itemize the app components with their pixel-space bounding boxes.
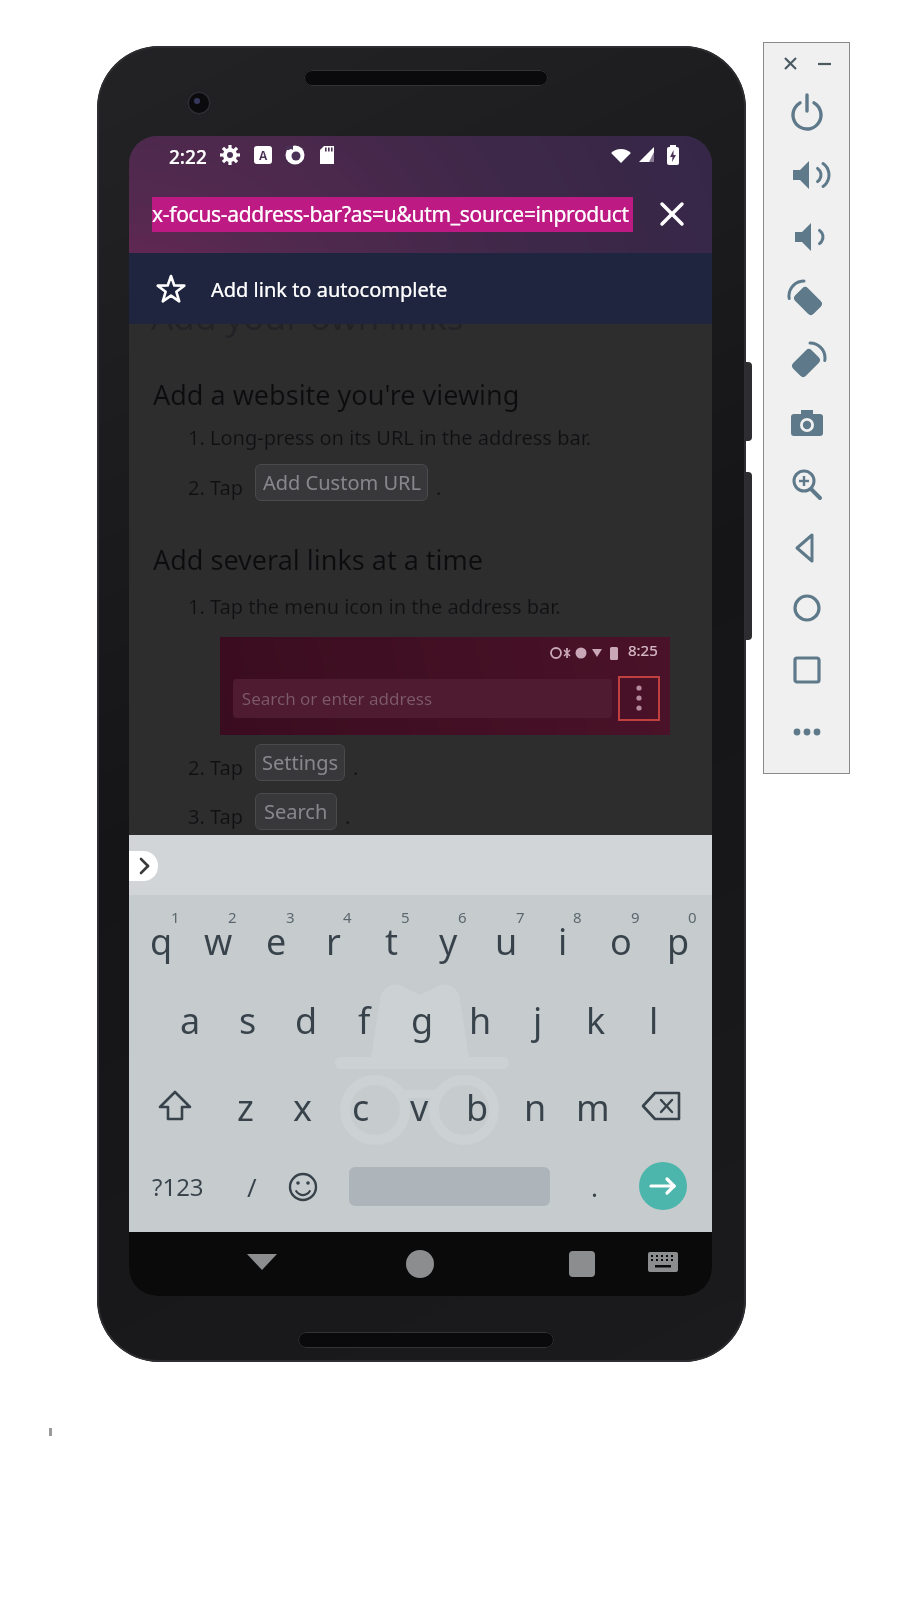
button[interactable]: n	[475, 1077, 595, 1137]
staticText: e	[266, 917, 287, 966]
button[interactable]: 1	[129, 887, 235, 947]
button[interactable]: b	[417, 1077, 537, 1137]
button[interactable]	[155, 1089, 195, 1125]
button[interactable]: a	[130, 990, 250, 1050]
button[interactable]: x	[243, 1077, 363, 1137]
button[interactable]	[245, 1250, 279, 1278]
button[interactable]: h	[420, 990, 540, 1050]
button[interactable]	[785, 215, 829, 259]
staticText: o	[610, 917, 632, 966]
button[interactable]	[569, 1251, 595, 1277]
staticText: Add a website you're viewing	[153, 376, 520, 413]
button[interactable]: 6	[402, 887, 522, 947]
button[interactable]: Add Custom URL	[255, 464, 428, 501]
staticText: Settings	[262, 749, 339, 776]
button[interactable]: o	[561, 911, 681, 971]
button[interactable]	[647, 1252, 679, 1278]
button[interactable]: q	[129, 911, 221, 971]
staticText: c	[352, 1083, 370, 1132]
button[interactable]: 9	[575, 887, 695, 947]
staticText: m	[576, 1083, 610, 1132]
button[interactable]	[785, 401, 829, 445]
button[interactable]: v	[359, 1077, 479, 1137]
staticText: w	[204, 917, 233, 966]
button[interactable]	[785, 339, 829, 383]
staticText: 2:22	[169, 144, 207, 170]
button[interactable]	[781, 54, 801, 74]
button[interactable]: s	[188, 990, 308, 1050]
button[interactable]: i	[503, 911, 623, 971]
button[interactable]: x-focus-address-bar?as=u&utm_source=inpr…	[152, 197, 633, 232]
button[interactable]: c	[301, 1077, 421, 1137]
button[interactable]: 2	[172, 887, 292, 947]
button[interactable]: 5	[345, 887, 465, 947]
button[interactable]: u	[446, 911, 566, 971]
button[interactable]: Add link to autocomplete	[129, 253, 712, 324]
button[interactable]: 4	[287, 887, 407, 947]
button[interactable]: z	[185, 1077, 305, 1137]
staticText: Search or enter address	[233, 687, 433, 710]
button[interactable]: Settings	[255, 744, 345, 781]
staticText: ?123	[152, 1170, 204, 1203]
staticText: 0	[688, 907, 697, 927]
button[interactable]	[785, 649, 829, 693]
button[interactable]: 7	[460, 887, 580, 947]
button[interactable]: /	[192, 1156, 312, 1216]
staticText: y	[439, 917, 458, 966]
staticText: 2	[228, 907, 237, 927]
button[interactable]: e	[216, 911, 336, 971]
button[interactable]	[785, 527, 829, 571]
staticText: v	[410, 1083, 429, 1132]
button[interactable]: t	[331, 911, 451, 971]
button[interactable]: 8	[517, 887, 637, 947]
staticText: a	[180, 996, 201, 1045]
staticText: A	[259, 147, 268, 163]
staticText: i	[558, 917, 568, 966]
button[interactable]	[287, 1171, 319, 1203]
staticText: r	[326, 917, 341, 966]
button[interactable]: l	[594, 990, 712, 1050]
staticText: z	[237, 1083, 254, 1132]
button[interactable]	[785, 153, 829, 197]
button[interactable]	[406, 1250, 434, 1278]
staticText: n	[524, 1083, 547, 1132]
button[interactable]: p	[618, 911, 712, 971]
button[interactable]: r	[273, 911, 393, 971]
staticText: 3	[286, 907, 295, 927]
button[interactable]: 0	[632, 887, 712, 947]
button[interactable]: f	[304, 990, 424, 1050]
button[interactable]	[785, 463, 829, 507]
button[interactable]	[639, 1162, 687, 1210]
staticText: h	[469, 996, 492, 1045]
button[interactable]	[129, 851, 158, 881]
button[interactable]: d	[246, 990, 366, 1050]
staticText: 2. Tap	[188, 474, 244, 501]
staticText: Add several links at a time	[153, 541, 484, 578]
staticText: 2. Tap	[188, 754, 244, 781]
button[interactable]: .	[534, 1156, 654, 1216]
button[interactable]: ?123	[129, 1156, 238, 1216]
button[interactable]: y	[388, 911, 508, 971]
staticText: /	[247, 1169, 257, 1204]
button[interactable]: Search	[255, 793, 337, 830]
staticText: d	[295, 996, 318, 1045]
button[interactable]	[785, 587, 829, 631]
button[interactable]	[815, 54, 835, 74]
button[interactable]: w	[158, 911, 278, 971]
button[interactable]: g	[362, 990, 482, 1050]
button[interactable]	[785, 711, 829, 755]
staticText: 8:25	[628, 640, 658, 660]
button[interactable]: j	[478, 990, 598, 1050]
staticText: 6	[458, 907, 467, 927]
button[interactable]: 3	[230, 887, 350, 947]
button[interactable]	[785, 91, 829, 135]
staticText: x-focus-address-bar?as=u&utm_source=inpr…	[152, 200, 629, 229]
button[interactable]	[650, 192, 694, 236]
staticText: .	[353, 754, 359, 781]
button[interactable]: k	[536, 990, 656, 1050]
staticText: Add link to autocomplete	[211, 276, 448, 303]
button[interactable]	[641, 1091, 685, 1123]
button[interactable]: m	[533, 1077, 653, 1137]
button[interactable]	[785, 277, 829, 321]
